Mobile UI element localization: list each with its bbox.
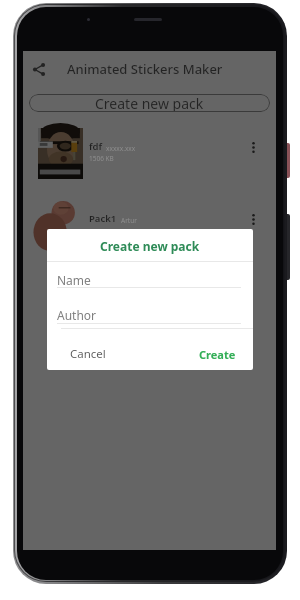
staticText: Cancel bbox=[70, 346, 106, 362]
staticText: Create bbox=[199, 347, 236, 362]
staticText: Pack1 bbox=[89, 212, 117, 225]
button[interactable]: fdf bbox=[23, 118, 276, 190]
button[interactable]: More options bbox=[245, 208, 261, 230]
staticText: Author bbox=[57, 307, 97, 323]
staticText: Animated Stickers Maker bbox=[67, 60, 223, 78]
button[interactable]: Pack1 bbox=[23, 190, 276, 262]
button[interactable]: More options bbox=[245, 136, 261, 158]
staticText: xxxxx.xxx bbox=[106, 144, 136, 153]
staticText: fdf bbox=[89, 140, 102, 153]
staticText: Create new pack bbox=[100, 238, 200, 254]
staticText: Artur bbox=[121, 216, 137, 225]
button[interactable]: Create bbox=[195, 341, 239, 367]
button[interactable]: Cancel bbox=[65, 341, 111, 367]
staticText: Create new pack bbox=[95, 94, 204, 112]
button[interactable]: Create new pack bbox=[29, 94, 270, 112]
staticText: 1506 KB bbox=[89, 154, 114, 163]
staticText: Name bbox=[57, 272, 91, 288]
button[interactable]: Share bbox=[23, 51, 55, 87]
